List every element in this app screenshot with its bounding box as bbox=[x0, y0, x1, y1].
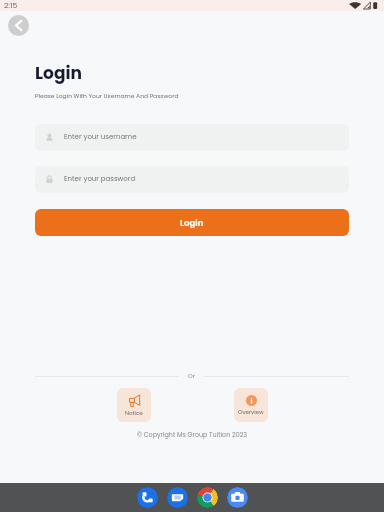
button[interactable]: Back bbox=[8, 15, 29, 36]
button[interactable]: Messages bbox=[167, 487, 188, 508]
button[interactable]: Camera bbox=[227, 487, 248, 508]
button[interactable]: Enter your password bbox=[35, 166, 349, 193]
button[interactable]: Login bbox=[35, 209, 349, 236]
button[interactable]: Phone bbox=[137, 487, 158, 508]
button[interactable]: Notice bbox=[117, 388, 151, 422]
button[interactable]: Chrome bbox=[197, 487, 218, 508]
staticText: Please Login With Your Username And Pass… bbox=[35, 92, 179, 100]
staticText: Login bbox=[35, 61, 82, 85]
button[interactable]: Overview bbox=[234, 388, 268, 422]
staticText: 2:15 bbox=[4, 0, 18, 11]
staticText: Overview bbox=[238, 408, 264, 416]
staticText: Login bbox=[180, 217, 204, 229]
staticText: Enter your username bbox=[64, 132, 137, 142]
staticText: © Copyright Ms Group Tuition 2023 bbox=[0, 430, 384, 439]
staticText: Notice bbox=[125, 409, 143, 417]
button[interactable]: Enter your username bbox=[35, 124, 349, 151]
staticText: Or bbox=[188, 372, 195, 380]
staticText: Enter your password bbox=[64, 174, 136, 184]
